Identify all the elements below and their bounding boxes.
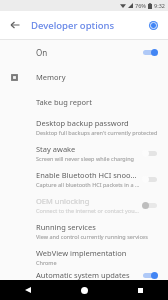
staticText: Enable Bluetooth HCI snoop log xyxy=(36,170,140,180)
staticText: OEM unlocking xyxy=(36,196,90,206)
staticText: Take bug report xyxy=(36,97,92,107)
button[interactable]: Enable Bluetooth HCI snoop log xyxy=(0,166,168,192)
staticText: Memory xyxy=(36,72,66,82)
staticText: Capture all bluetooth HCI packets in a f… xyxy=(36,181,140,188)
button[interactable]: Help xyxy=(144,16,162,34)
staticText: Screen will never sleep while charging xyxy=(36,155,134,162)
staticText: 76% xyxy=(135,2,146,9)
button[interactable]: On xyxy=(140,46,160,59)
button[interactable]: Running services xyxy=(0,218,168,244)
staticText: Desktop full backups aren't currently pr… xyxy=(36,129,158,136)
button[interactable]: Off xyxy=(140,173,160,186)
button[interactable]: Take bug report xyxy=(0,89,168,114)
staticText: Running services xyxy=(36,222,96,232)
staticText: On xyxy=(36,47,140,58)
staticText: Desktop backup password xyxy=(36,118,129,128)
staticText: View and control currently running servi… xyxy=(36,233,148,240)
button[interactable]: Stay awake xyxy=(0,140,168,166)
staticText: Connect to the internet or contact your … xyxy=(36,207,140,214)
button[interactable]: Off xyxy=(140,147,160,160)
staticText: 9:32 xyxy=(154,2,165,9)
staticText: Chrome xyxy=(36,259,57,266)
button[interactable]: On xyxy=(140,270,160,280)
button[interactable]: OEM unlocking xyxy=(0,192,168,218)
button[interactable]: Desktop backup password xyxy=(0,114,168,140)
staticText: WebView implementation xyxy=(36,248,127,258)
button[interactable]: WebView implementation xyxy=(0,244,168,270)
staticText: Automatic system updates xyxy=(36,270,140,280)
staticText: Developer options xyxy=(31,19,144,32)
button[interactable]: Automatic system updates xyxy=(0,270,168,280)
button[interactable]: Recent apps xyxy=(132,282,148,298)
button[interactable]: On xyxy=(0,40,168,65)
button[interactable]: Navigate up xyxy=(5,15,25,35)
button[interactable]: Home xyxy=(76,282,92,298)
button[interactable]: Back xyxy=(20,282,36,298)
button[interactable]: Memory xyxy=(0,65,168,89)
button: Off xyxy=(140,199,160,212)
staticText: Stay awake xyxy=(36,144,76,154)
